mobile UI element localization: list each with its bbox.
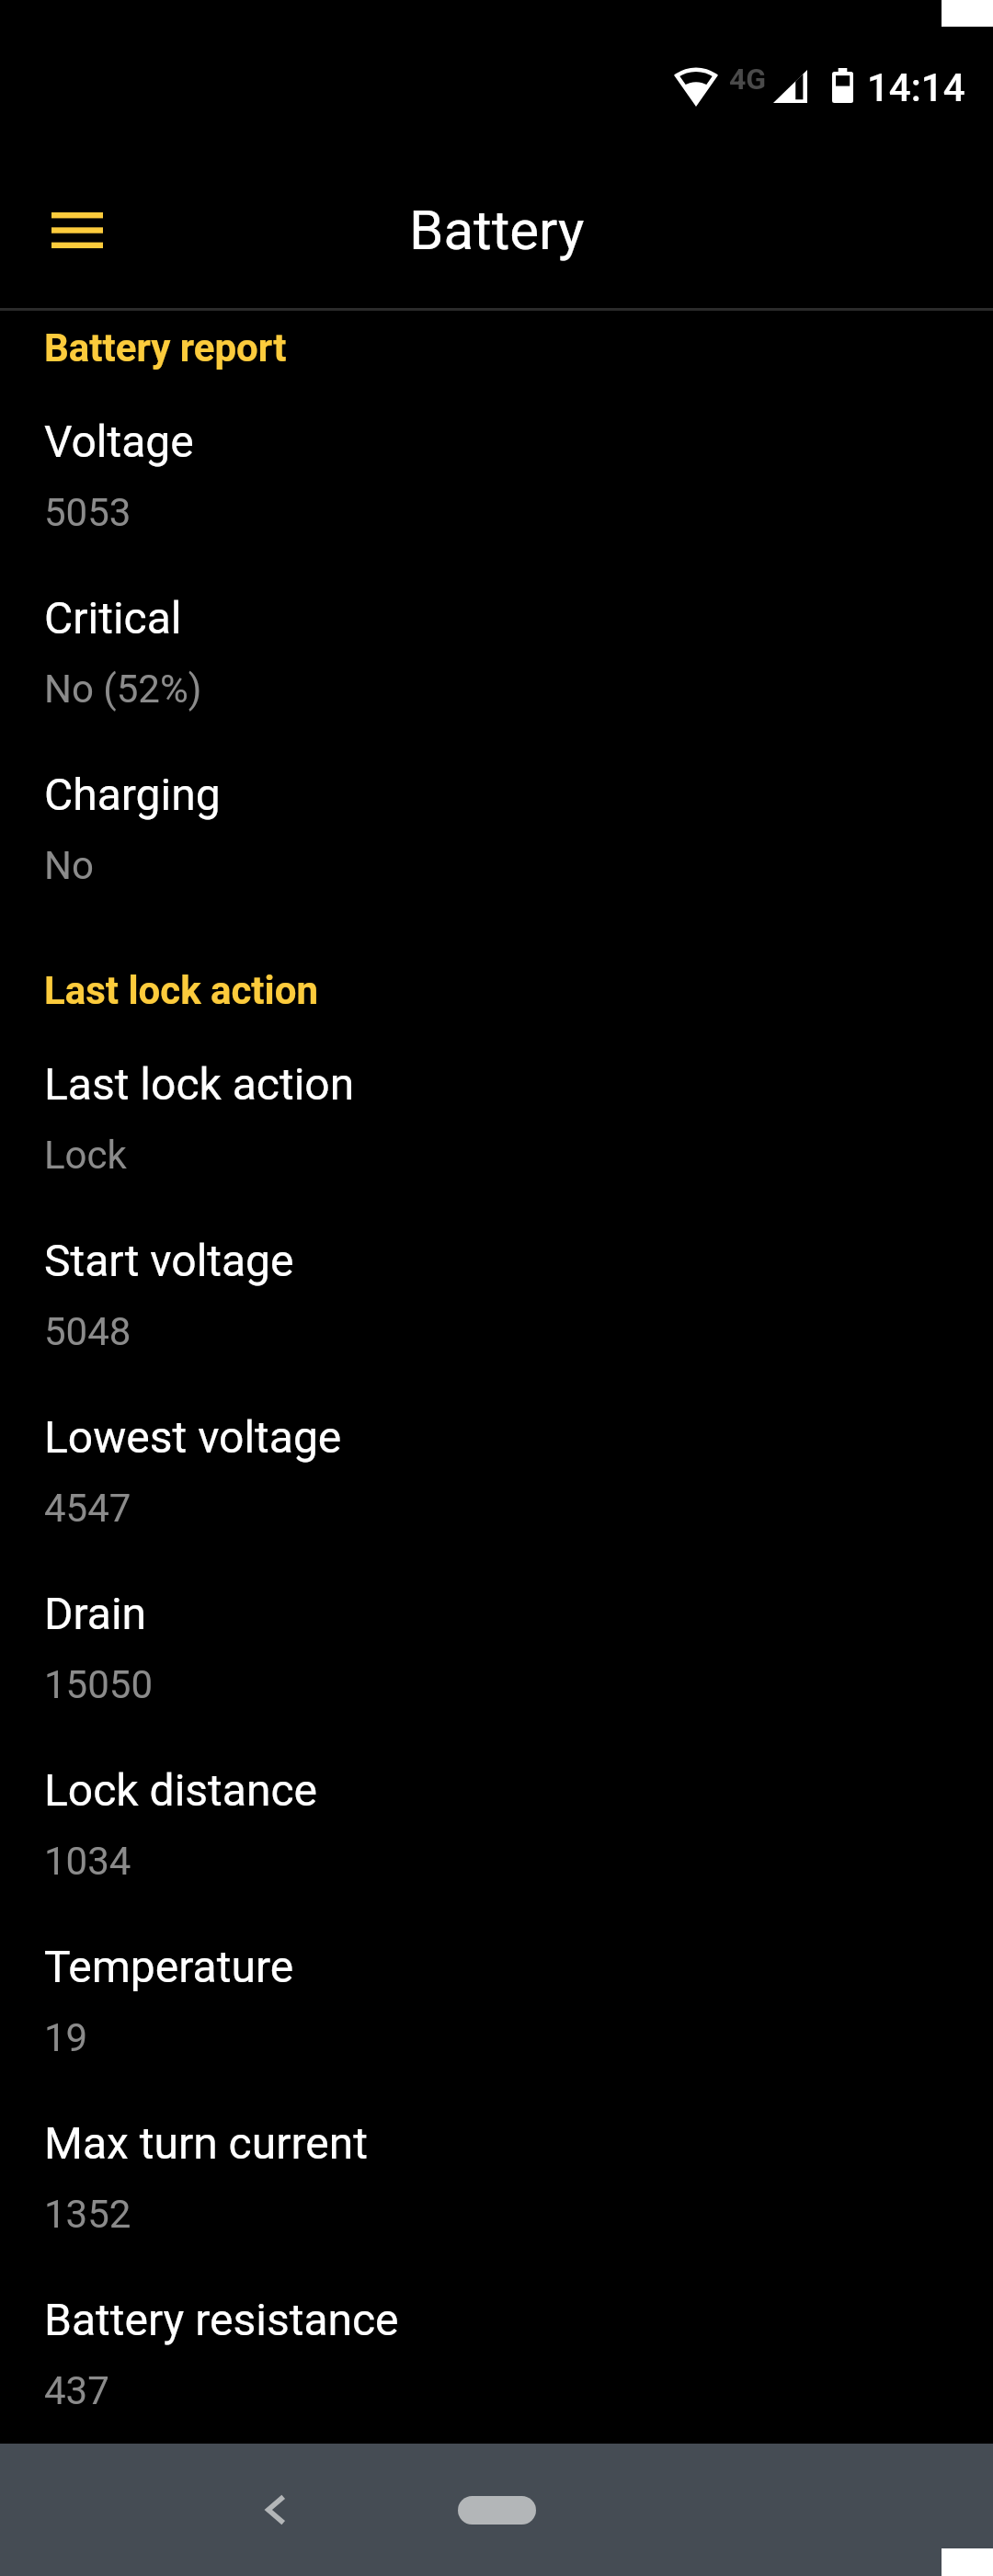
staticText: Start voltage <box>44 1235 294 1286</box>
staticText: Lowest voltage <box>44 1411 342 1463</box>
button[interactable]: Temperature <box>0 1922 993 2099</box>
staticText: Temperature <box>44 1941 294 1992</box>
button[interactable]: Drain <box>0 1569 993 1746</box>
staticText: 15050 <box>44 1662 154 1707</box>
button[interactable]: Lowest voltage <box>0 1393 993 1569</box>
staticText: Charging <box>44 769 221 820</box>
staticText: Voltage <box>44 416 194 467</box>
staticText: 14:14 <box>867 65 965 110</box>
button[interactable]: Charging <box>0 750 993 927</box>
staticText: Critical <box>44 592 182 644</box>
button[interactable]: Voltage <box>0 397 993 574</box>
staticText: Max turn current <box>44 2117 368 2169</box>
staticText: Lock distance <box>44 1764 317 1816</box>
button[interactable]: Last lock action <box>0 1040 993 1216</box>
button[interactable]: Critical <box>0 574 993 750</box>
staticText: 4G <box>729 62 767 97</box>
staticText: No <box>44 843 94 888</box>
button[interactable]: Home <box>405 2455 588 2565</box>
button[interactable]: Start voltage <box>0 1216 993 1393</box>
staticText: Battery resistance <box>44 2294 399 2345</box>
staticText: Last lock action <box>44 1058 355 1110</box>
staticText: Last lock action <box>44 968 318 1013</box>
staticText: 4547 <box>44 1486 131 1531</box>
staticText: 19 <box>44 2015 88 2060</box>
button[interactable]: Back <box>221 2455 331 2565</box>
button[interactable]: Open navigation menu <box>20 173 134 287</box>
staticText: Lock <box>44 1133 127 1178</box>
staticText: 5053 <box>44 490 131 535</box>
button[interactable]: Lock distance <box>0 1746 993 1922</box>
staticText: 1352 <box>44 2192 131 2237</box>
staticText: 5048 <box>44 1309 131 1354</box>
staticText: Battery <box>409 198 585 262</box>
button[interactable]: Max turn current <box>0 2099 993 2275</box>
staticText: Battery report <box>44 325 287 370</box>
staticText: No (52%) <box>44 667 202 712</box>
staticText: 1034 <box>44 1839 131 1884</box>
button[interactable]: Battery resistance <box>0 2275 993 2452</box>
staticText: 437 <box>44 2368 109 2413</box>
staticText: Drain <box>44 1588 147 1639</box>
